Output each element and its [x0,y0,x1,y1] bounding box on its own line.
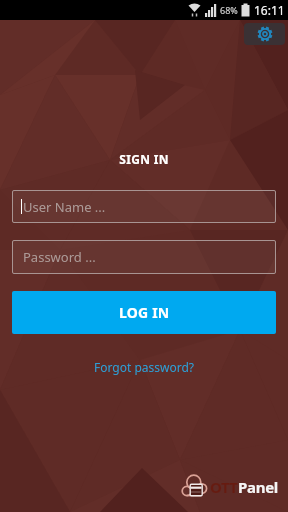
button[interactable]: Forgot password? [94,359,195,375]
staticText: 68% [220,4,238,16]
button[interactable] [244,23,285,45]
staticText: 16:11 [254,2,285,18]
staticText: Panel [238,477,278,497]
button[interactable]: User Name ... [12,190,276,223]
staticText: LOG IN [119,303,170,322]
staticText: Forgot password? [94,359,195,375]
button[interactable]: LOG IN [12,291,276,334]
staticText: SIGN IN [119,151,169,167]
staticText: User Name ... [23,198,106,216]
staticText: OTT [210,477,238,497]
button[interactable]: Password ... [12,240,276,274]
staticText: Password ... [23,248,96,266]
